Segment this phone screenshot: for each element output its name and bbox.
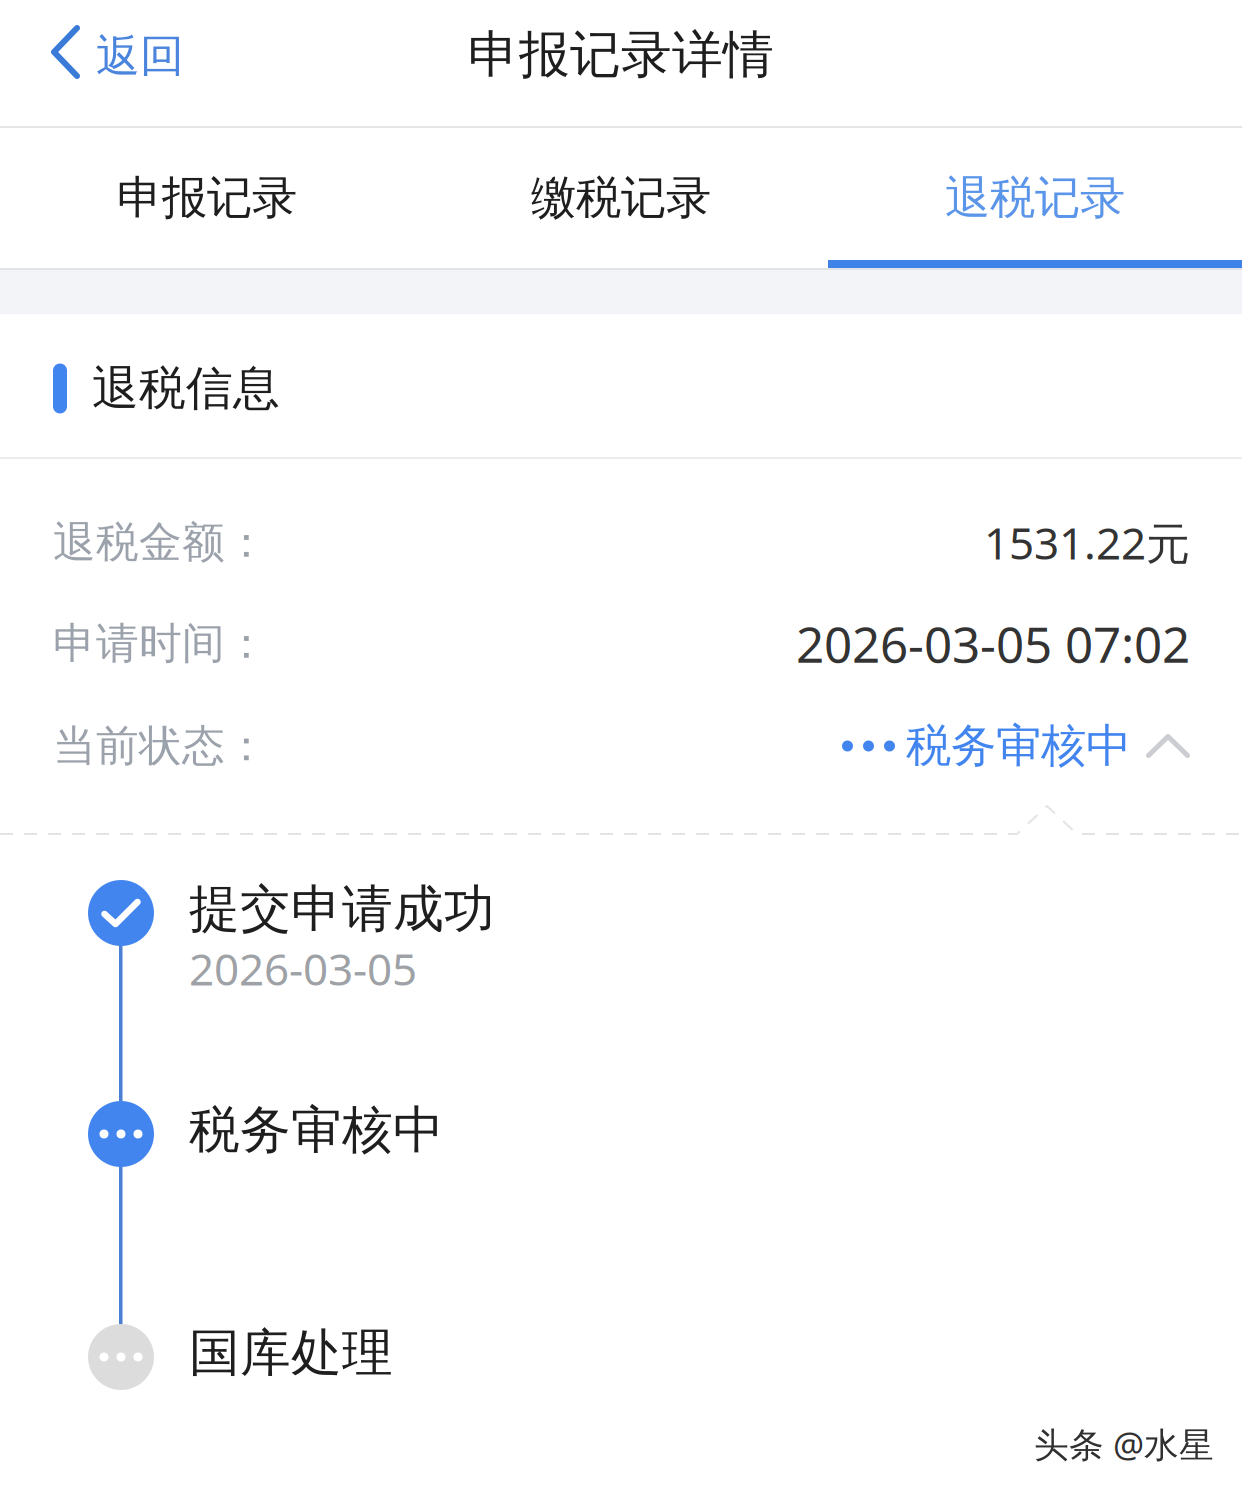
- staticText: 2026-03-05 07:02: [796, 611, 1190, 676]
- button[interactable]: 退税记录: [828, 128, 1242, 260]
- button[interactable]: 返回: [0, 0, 208, 126]
- button[interactable]: 缴税记录: [414, 128, 828, 260]
- staticText: 退税金额：: [53, 516, 268, 569]
- staticText: 申报记录详情: [468, 24, 774, 86]
- staticText: 返回: [96, 29, 184, 83]
- staticText: 退税信息: [92, 360, 280, 417]
- staticText: 提交申请成功: [189, 878, 495, 940]
- staticText: 1531.22元: [984, 513, 1190, 572]
- staticText: 申报记录: [117, 170, 297, 226]
- staticText: 税务审核中: [906, 718, 1131, 774]
- staticText: 头条 @水星: [1034, 1421, 1214, 1467]
- button[interactable]: 申报记录: [0, 128, 414, 260]
- staticText: 税务审核中: [189, 1099, 444, 1161]
- staticText: 当前状态：: [53, 720, 268, 772]
- staticText: 申请时间：: [53, 617, 268, 670]
- button[interactable]: 当前状态：: [53, 694, 1190, 798]
- staticText: 退税记录: [945, 170, 1125, 226]
- staticText: 缴税记录: [531, 170, 711, 226]
- staticText: 国库处理: [189, 1322, 393, 1384]
- staticText: 2026-03-05: [189, 939, 417, 998]
